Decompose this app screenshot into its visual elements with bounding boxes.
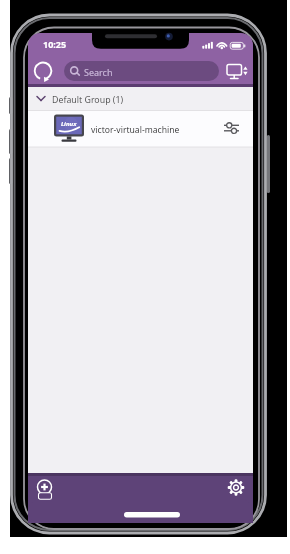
staticText: Search xyxy=(84,66,113,78)
staticText: Default Group (1) xyxy=(52,94,124,106)
staticText: 10:25 xyxy=(43,38,67,50)
staticText: Linux xyxy=(61,120,77,128)
button[interactable] xyxy=(224,476,250,502)
button[interactable] xyxy=(218,115,246,141)
button[interactable] xyxy=(32,476,58,502)
staticText: victor-virtual-machine xyxy=(91,124,180,136)
button[interactable] xyxy=(34,60,56,82)
button[interactable] xyxy=(28,111,218,147)
button[interactable] xyxy=(30,90,230,108)
button[interactable] xyxy=(224,62,250,82)
button[interactable] xyxy=(64,61,219,81)
